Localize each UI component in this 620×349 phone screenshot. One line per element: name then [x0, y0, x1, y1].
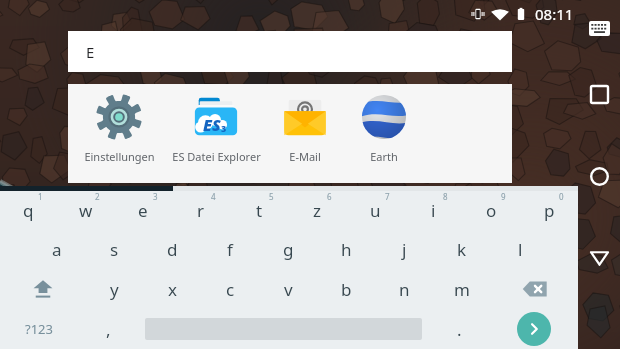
button[interactable]: ,	[77, 309, 139, 349]
button[interactable]: o	[462, 191, 520, 230]
button[interactable]: p	[520, 191, 578, 230]
button[interactable]: Back	[578, 236, 620, 280]
staticText: 2	[95, 191, 100, 202]
button[interactable]: i	[404, 191, 462, 230]
button[interactable]: Enter	[490, 309, 578, 349]
button[interactable]: q	[0, 191, 57, 230]
staticText: j	[402, 238, 407, 261]
staticText: ES	[203, 114, 221, 136]
staticText: c	[226, 278, 235, 301]
staticText: w	[79, 199, 93, 222]
staticText: ,	[106, 318, 111, 341]
button[interactable]: n	[375, 269, 433, 309]
staticText: 7	[385, 191, 390, 202]
staticText: 3	[221, 122, 227, 134]
staticText: ES Datei Explorer	[172, 149, 261, 164]
staticText: m	[454, 278, 470, 301]
button[interactable]: c	[201, 269, 259, 309]
staticText: f	[227, 238, 233, 261]
staticText: Earth	[370, 149, 398, 164]
button[interactable]: j	[375, 230, 433, 269]
staticText: i	[431, 199, 436, 222]
button[interactable]: a	[28, 230, 85, 269]
button[interactable]: Einstellungen	[72, 93, 166, 164]
button[interactable]: z	[288, 191, 346, 230]
staticText: o	[486, 199, 497, 222]
staticText: 6	[327, 191, 332, 202]
staticText: t	[256, 199, 263, 222]
staticText: z	[313, 199, 321, 222]
button[interactable]: k	[433, 230, 491, 269]
button[interactable]: m	[433, 269, 491, 309]
button[interactable]: u	[346, 191, 404, 230]
button[interactable]: Delete	[491, 269, 578, 309]
button[interactable]: e	[114, 191, 172, 230]
staticText: u	[370, 199, 381, 222]
staticText: 4	[211, 191, 216, 202]
button[interactable]: x	[143, 269, 201, 309]
button[interactable]: E-Mail	[266, 93, 344, 164]
staticText: k	[457, 238, 467, 261]
staticText: q	[23, 199, 34, 222]
staticText: a	[52, 238, 62, 261]
button[interactable]: d	[143, 230, 201, 269]
button[interactable]	[139, 318, 428, 340]
staticText: E-Mail	[289, 149, 321, 164]
staticText: Einstellungen	[84, 149, 155, 164]
button[interactable]: b	[317, 269, 375, 309]
staticText: 08:11	[535, 4, 574, 24]
staticText: s	[110, 238, 119, 261]
staticText: ?123	[25, 320, 53, 338]
staticText: 3	[153, 191, 158, 202]
staticText: d	[167, 238, 178, 261]
button[interactable]: s	[85, 230, 143, 269]
button[interactable]: l	[491, 230, 549, 269]
staticText: e	[138, 199, 148, 222]
button[interactable]: .	[428, 309, 490, 349]
button[interactable]: w	[57, 191, 114, 230]
staticText: n	[399, 278, 410, 301]
button[interactable]: ES	[166, 93, 266, 164]
staticText: h	[341, 238, 352, 261]
staticText: p	[544, 199, 555, 222]
staticText: g	[283, 238, 294, 261]
button[interactable]: y	[86, 269, 143, 309]
button[interactable]: Shift	[0, 269, 86, 309]
button[interactable]: ?123	[0, 309, 77, 349]
button[interactable]: Earth	[344, 93, 424, 164]
staticText: 0	[559, 191, 564, 202]
staticText: 8	[443, 191, 448, 202]
button[interactable]: t	[230, 191, 288, 230]
button[interactable]: Home	[578, 154, 620, 198]
staticText: .	[457, 318, 462, 341]
staticText: 5	[269, 191, 274, 202]
button[interactable]: E	[68, 31, 512, 72]
button[interactable]: h	[317, 230, 375, 269]
staticText: r	[197, 199, 205, 222]
staticText: E	[86, 42, 95, 62]
staticText: v	[284, 278, 293, 301]
button[interactable]: r	[172, 191, 230, 230]
staticText: 1	[38, 191, 43, 202]
button[interactable]: f	[201, 230, 259, 269]
button[interactable]: g	[259, 230, 317, 269]
staticText: y	[110, 278, 119, 301]
button[interactable]: v	[259, 269, 317, 309]
staticText: x	[168, 278, 177, 301]
staticText: 9	[501, 191, 506, 202]
staticText: l	[518, 238, 523, 261]
button[interactable]: Hide keyboard	[578, 6, 620, 50]
button[interactable]: Recents	[578, 72, 620, 116]
staticText: b	[341, 278, 352, 301]
